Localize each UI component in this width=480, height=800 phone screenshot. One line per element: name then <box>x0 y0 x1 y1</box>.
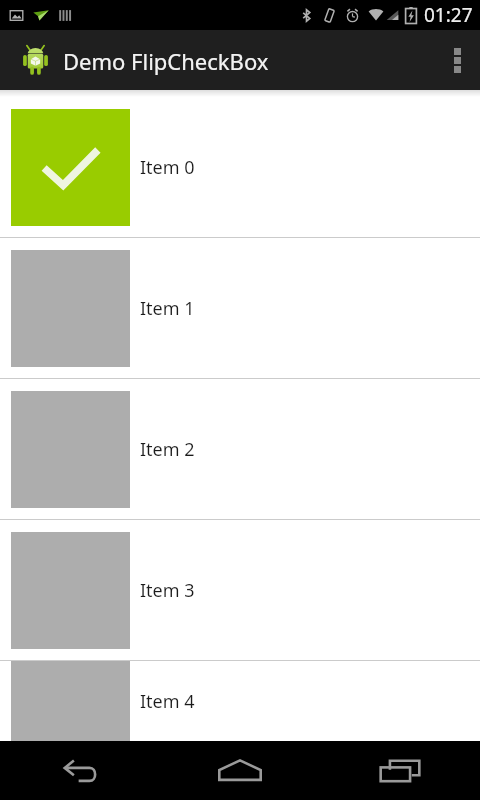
button[interactable]: Item 3 <box>0 520 480 660</box>
button[interactable]: Item 4 <box>0 661 480 741</box>
staticText: Item 3 <box>140 578 195 603</box>
staticText: 01:27 <box>424 2 473 28</box>
button[interactable]: Recent apps <box>320 741 480 800</box>
staticText: Item 0 <box>140 155 195 180</box>
staticText: Item 2 <box>140 437 195 462</box>
button[interactable]: Item 2 <box>0 379 480 519</box>
button[interactable]: More options <box>434 30 480 90</box>
button[interactable]: Home <box>160 741 320 800</box>
button[interactable]: Back <box>0 741 160 800</box>
button[interactable]: Item 1 <box>0 238 480 378</box>
staticText: Demo FlipCheckBox <box>63 46 269 76</box>
staticText: Item 1 <box>140 296 195 321</box>
button[interactable]: Item 0 <box>0 97 480 237</box>
staticText: Item 4 <box>140 689 195 714</box>
